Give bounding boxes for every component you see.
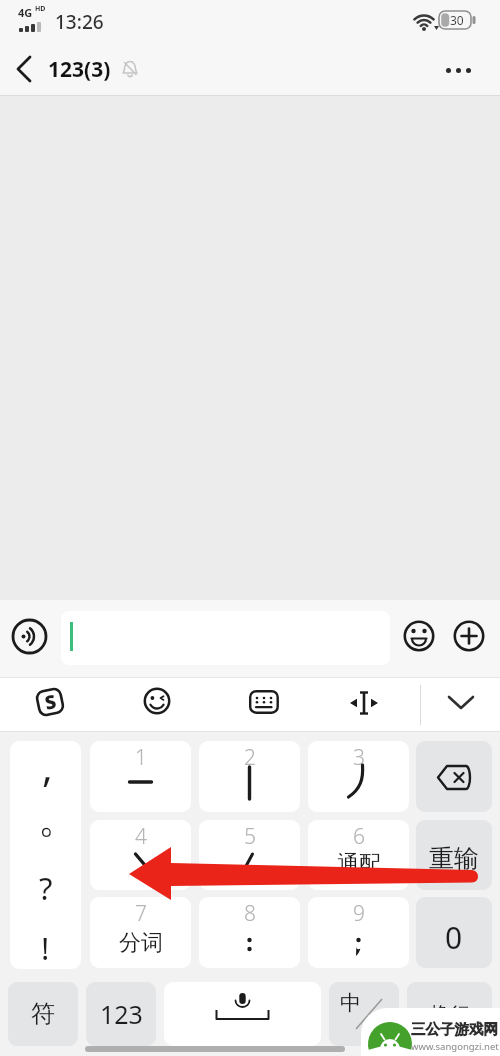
button[interactable]: 3 (308, 741, 409, 812)
staticText: 123(3) (48, 55, 111, 84)
staticText: 重输 (429, 843, 479, 874)
button[interactable]: 9 (308, 897, 409, 968)
staticText: 13:26 (55, 9, 104, 35)
staticText: 123 (100, 997, 143, 1031)
staticText: HD (35, 4, 46, 14)
staticText: 中 (340, 990, 361, 1016)
button[interactable]: 4 (90, 820, 191, 890)
button[interactable]: 中 (329, 982, 399, 1046)
button[interactable] (144, 688, 170, 714)
button[interactable]: 换行 (407, 982, 492, 1046)
staticText: 分词 (119, 929, 163, 957)
button[interactable]: 6 (308, 820, 409, 890)
staticText: 4 (135, 822, 147, 851)
button[interactable]: , (10, 741, 81, 969)
staticText: 4G (18, 5, 33, 20)
button[interactable] (164, 982, 321, 1046)
button[interactable] (403, 620, 435, 652)
staticText: 3 (353, 743, 365, 772)
staticText: 6 (353, 822, 365, 851)
staticText: 7 (135, 899, 147, 928)
staticText: 30 (450, 12, 464, 28)
button[interactable]: 123 (86, 982, 156, 1046)
button[interactable] (11, 618, 48, 655)
button[interactable] (61, 611, 390, 665)
staticText: ! (41, 927, 50, 969)
button[interactable]: 2 (199, 741, 300, 812)
staticText: 0 (445, 917, 463, 958)
staticText: 三公子游戏网 (411, 1020, 498, 1038)
button[interactable] (249, 690, 279, 714)
button[interactable]: 符 (8, 982, 78, 1046)
staticText: 5 (244, 822, 256, 851)
button[interactable]: 7 (90, 897, 191, 968)
button[interactable]: 1 (90, 741, 191, 812)
staticText: 换行 (430, 1002, 470, 1027)
button[interactable]: S (33, 685, 67, 719)
staticText: ? (39, 867, 53, 909)
staticText: 符 (31, 999, 55, 1029)
staticText: www.sangongzi.net (411, 1040, 499, 1053)
staticText: S (42, 688, 59, 716)
button[interactable] (446, 62, 486, 78)
staticText: , (42, 741, 53, 793)
button[interactable]: 5 (199, 820, 300, 890)
button[interactable] (14, 54, 38, 84)
button[interactable]: 8 (199, 897, 300, 968)
staticText: 2 (244, 743, 256, 772)
staticText: 英 (369, 1014, 385, 1034)
button[interactable]: 0 (416, 897, 492, 968)
staticText: 通配 (337, 850, 381, 878)
staticText: 9 (353, 899, 365, 928)
staticText: 。 (38, 793, 78, 843)
button[interactable] (447, 690, 475, 714)
button[interactable] (348, 690, 380, 716)
staticText: 8 (244, 899, 256, 928)
staticText: 1 (135, 743, 147, 772)
button[interactable] (453, 620, 485, 652)
button[interactable] (416, 741, 492, 812)
button[interactable]: 重输 (416, 820, 492, 890)
